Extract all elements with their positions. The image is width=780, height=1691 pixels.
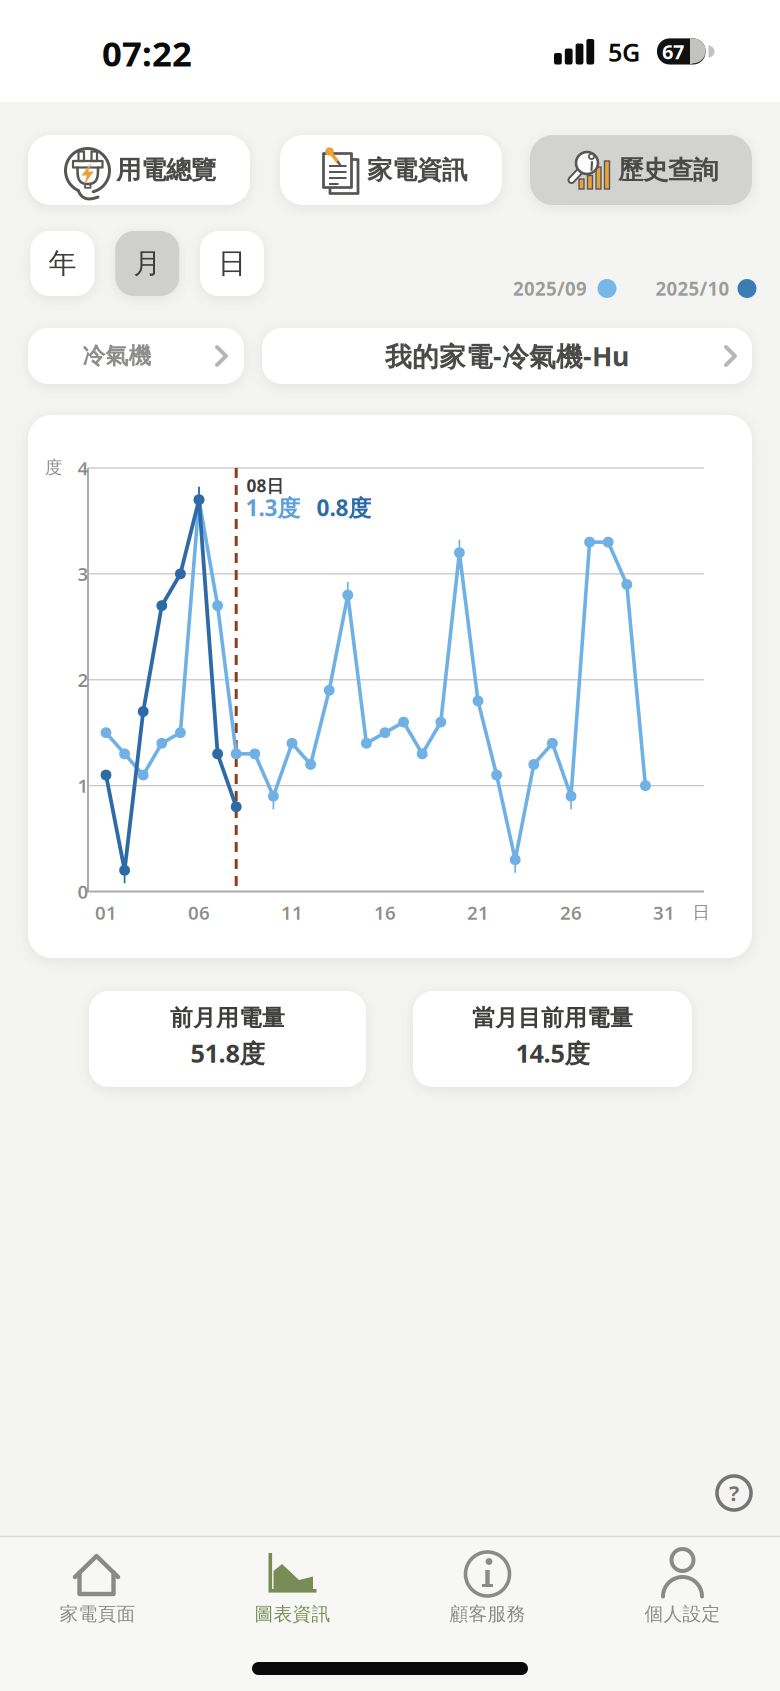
staticText: 歷史查詢 — [618, 154, 718, 185]
staticText: 我的家電-冷氣機-Hu — [385, 338, 629, 374]
staticText: 26 — [560, 900, 582, 925]
staticText: 個人設定 — [644, 1602, 720, 1625]
staticText: 用電總覽 — [116, 154, 216, 185]
staticText: 顧客服務 — [449, 1602, 525, 1625]
staticText: 日 — [218, 246, 246, 281]
staticText: 67 — [662, 38, 684, 65]
staticText: 0.8度 — [316, 492, 371, 522]
staticText: 1 — [77, 773, 88, 798]
staticText: 家電頁面 — [59, 1602, 135, 1625]
staticText: 1.3度 — [245, 492, 300, 522]
staticText: 08日 — [246, 474, 283, 497]
staticText: 5G — [608, 35, 640, 69]
staticText: 3 — [77, 561, 88, 586]
staticText: 冷氣機 — [82, 342, 151, 370]
staticText: 2025/09 — [513, 276, 587, 301]
staticText: 日 — [692, 902, 709, 923]
staticText: 06 — [188, 900, 210, 925]
staticText: 16 — [374, 900, 396, 925]
staticText: 31 — [653, 900, 675, 925]
staticText: 2 — [77, 667, 88, 692]
staticText: 0 — [77, 879, 88, 904]
staticText: ? — [729, 1479, 739, 1507]
staticText: 4 — [77, 456, 88, 480]
staticText: 當月目前用電量 — [472, 1004, 633, 1032]
staticText: 51.8度 — [190, 1036, 264, 1070]
staticText: 21 — [467, 900, 489, 925]
staticText: 前月用電量 — [170, 1004, 285, 1032]
staticText: 2025/10 — [655, 276, 729, 301]
staticText: 家電資訊 — [367, 154, 467, 185]
staticText: 圖表資訊 — [254, 1602, 330, 1625]
staticText: 11 — [281, 900, 303, 925]
staticText: 度 — [45, 457, 62, 478]
staticText: 14.5度 — [515, 1036, 589, 1070]
staticText: 月 — [133, 246, 161, 281]
staticText: 年 — [48, 246, 76, 281]
staticText: 01 — [95, 900, 117, 925]
staticText: 07:22 — [102, 30, 192, 76]
